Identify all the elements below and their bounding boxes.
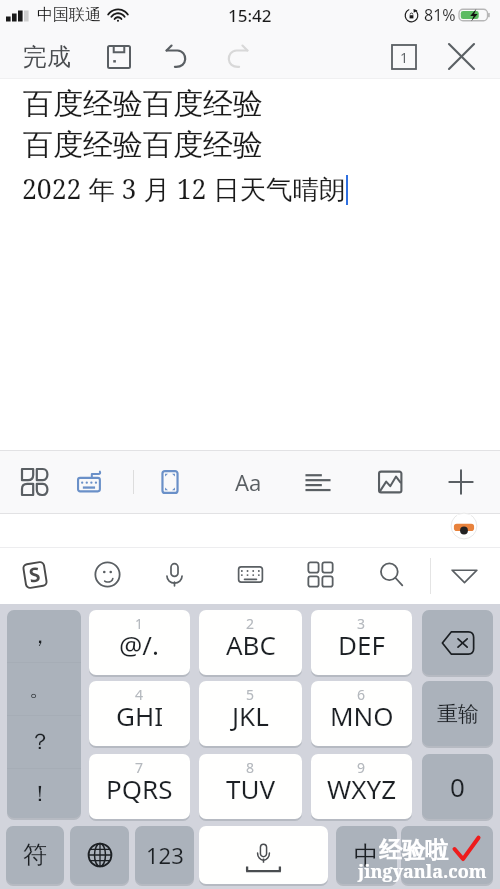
button[interactable]: 重输	[422, 681, 493, 746]
button[interactable]: Language	[70, 826, 129, 884]
button[interactable]: Save	[97, 32, 141, 81]
staticText: 中国联通	[37, 5, 101, 25]
staticText: ？	[29, 728, 51, 756]
staticText: 1	[135, 614, 144, 633]
staticText: S	[27, 560, 43, 588]
button[interactable]: 6	[311, 681, 412, 746]
staticText: MNO	[330, 698, 394, 733]
staticText: 123	[146, 840, 184, 870]
button[interactable]: ，	[7, 610, 81, 662]
staticText: JKL	[232, 698, 269, 733]
staticText: 重输	[437, 701, 479, 727]
staticText: 中	[354, 840, 379, 871]
button[interactable]: Panel	[299, 556, 341, 592]
button[interactable]: ！	[7, 769, 81, 818]
staticText: 15:42	[228, 4, 272, 27]
staticText: 完成	[23, 42, 71, 72]
button[interactable]: 4	[89, 681, 190, 746]
button[interactable]: Tool	[148, 450, 192, 514]
button[interactable]: 1	[89, 610, 190, 675]
staticText: 3	[357, 614, 366, 633]
staticText: WXYZ	[327, 771, 397, 806]
button[interactable]: 7	[89, 754, 190, 819]
button[interactable]: Page count	[382, 32, 426, 81]
staticText: 6	[357, 685, 366, 704]
button[interactable]: Tool	[13, 450, 57, 514]
button[interactable]: Tool	[369, 450, 413, 514]
button[interactable]: 0	[422, 754, 493, 819]
staticText: ABC	[226, 627, 276, 662]
staticText: PQRS	[106, 771, 173, 806]
staticText: DEF	[338, 627, 385, 662]
button[interactable]: Voice	[153, 556, 195, 592]
button[interactable]: Delete	[422, 610, 493, 675]
staticText: 4	[135, 685, 144, 704]
staticText: ，	[29, 622, 51, 650]
staticText: 2	[246, 614, 255, 633]
staticText: @/.	[119, 627, 160, 662]
button[interactable]: Redo	[215, 32, 259, 81]
button[interactable]: Space	[199, 826, 328, 884]
button[interactable]: 8	[199, 754, 302, 819]
button[interactable]: 符	[6, 826, 64, 884]
button[interactable]: Hide keyboard	[443, 556, 485, 592]
button[interactable]: 123	[135, 826, 194, 884]
button[interactable]: Font	[226, 450, 270, 514]
button[interactable]: 2	[199, 610, 302, 675]
staticText: 百度经验百度经验	[23, 126, 263, 164]
button[interactable]: 3	[311, 610, 412, 675]
staticText: TUV	[226, 771, 276, 806]
button[interactable]: Undo	[155, 32, 199, 81]
staticText: Aa	[235, 467, 262, 497]
staticText: 1	[400, 48, 409, 67]
staticText: 经验啦	[379, 836, 448, 865]
staticText: 5	[246, 685, 255, 704]
button[interactable]: Tool	[68, 450, 112, 514]
staticText: 7	[135, 758, 144, 777]
staticText: 。	[29, 675, 51, 703]
staticText: 0	[450, 769, 465, 804]
button[interactable]: Emoji	[86, 556, 128, 592]
button[interactable]: Tool	[296, 450, 340, 514]
button[interactable]: Enter	[401, 826, 493, 884]
button[interactable]: Search	[370, 556, 412, 592]
staticText: GHI	[116, 698, 164, 733]
staticText: 百度经验百度经验	[23, 85, 263, 123]
staticText: 81%	[424, 4, 456, 26]
staticText: jingyanla.com	[358, 859, 487, 884]
staticText: 符	[23, 840, 47, 870]
staticText: 9	[357, 758, 366, 777]
button[interactable]: Tool	[439, 450, 483, 514]
staticText: 8	[246, 758, 255, 777]
staticText: 2022 年 3 月 12 日天气晴朗	[22, 171, 346, 207]
button[interactable]: 完成	[8, 30, 88, 79]
button[interactable]: Avatar	[450, 512, 478, 540]
staticText: ！	[29, 780, 51, 808]
button[interactable]: 中	[336, 826, 397, 884]
button[interactable]: 。	[7, 663, 81, 715]
button[interactable]: ？	[7, 716, 81, 768]
button[interactable]: Close	[439, 32, 483, 81]
button[interactable]: 5	[199, 681, 302, 746]
button[interactable]: Sogou input	[14, 557, 56, 593]
button[interactable]: Handwriting	[229, 556, 271, 592]
button[interactable]: 9	[311, 754, 412, 819]
